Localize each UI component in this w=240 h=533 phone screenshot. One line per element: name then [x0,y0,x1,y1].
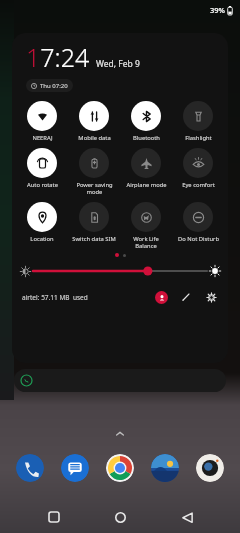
staticText: Bluetooth [133,134,160,142]
staticText: Eye comfort [182,181,215,189]
button[interactable]: Chrome [106,454,134,482]
button[interactable]: Back [174,504,200,530]
button[interactable]: Bluetooth [120,101,172,142]
other: Power saving mode [79,148,109,178]
button[interactable]: Airplane mode [120,148,172,189]
staticText: Wed, Feb 9 [96,58,140,70]
staticText: Mobile data [78,134,111,142]
button[interactable]: Home [107,504,133,530]
button[interactable]: Switch data SIM [68,202,120,243]
staticText: Location [30,235,54,243]
staticText: Switch data SIM [72,235,116,243]
other: Do Not Disturb [183,202,213,232]
button[interactable]: NEERAJ [16,101,68,142]
button[interactable]: Flashlight [172,101,224,142]
button[interactable]: Messages [61,454,89,482]
button[interactable]: Settings [204,290,218,304]
button[interactable]: Auto rotate [16,148,68,189]
staticText: Do Not Disturb [178,235,219,243]
staticText: Flashlight [185,134,212,142]
button[interactable]: Power saving mode [68,148,120,196]
button[interactable]: Phone [16,454,44,482]
other: Airplane mode [131,148,161,178]
staticText: 39% [210,5,225,15]
button[interactable]: Thu 07:20 [26,79,73,92]
staticText: Power saving mode [76,181,113,196]
button[interactable]: Location [16,202,68,243]
other: Bluetooth [131,101,161,131]
staticText: 17:24 [26,40,90,74]
button[interactable]: Mobile data [68,101,120,142]
other: Location [27,202,57,232]
other: NEERAJ [27,101,57,131]
button[interactable]: Recents [41,504,67,530]
other: Switch data SIM [79,202,109,232]
staticText: Auto rotate [27,181,58,189]
other: Eye comfort [183,148,213,178]
staticText: Work Life Balance [133,235,159,250]
other: Work Life Balance [131,202,161,232]
button[interactable]: User [155,291,168,304]
button[interactable]: Camera [196,454,224,482]
button[interactable]: Edit [179,290,193,304]
button[interactable] [33,264,207,278]
staticText: NEERAJ [32,134,53,142]
other: Flashlight [183,101,213,131]
staticText: Thu 07:20 [40,82,68,90]
other: Mobile data [79,101,109,131]
button[interactable] [14,369,226,392]
button[interactable]: Work Life Balance [120,202,172,250]
button[interactable]: Eye comfort [172,148,224,189]
button[interactable]: Do Not Disturb [172,202,224,243]
other: Auto rotate [27,148,57,178]
staticText: Airplane mode [126,181,167,189]
button[interactable]: Gallery [151,454,179,482]
button[interactable]: airtel: 57.11 MB used [22,293,88,302]
